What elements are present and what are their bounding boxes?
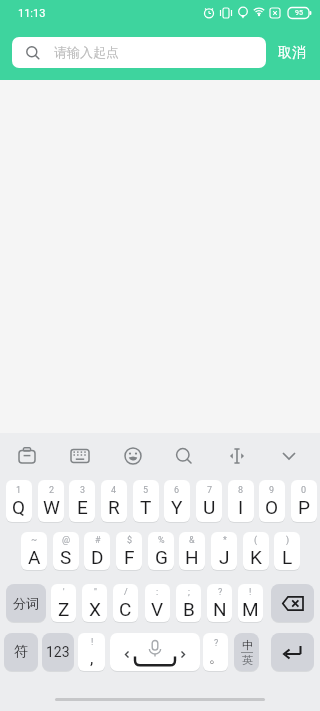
- button[interactable]: *: [211, 532, 237, 570]
- staticText: D: [91, 546, 104, 568]
- button[interactable]: [6, 435, 48, 477]
- button[interactable]: (: [243, 532, 269, 570]
- staticText: X: [89, 598, 101, 620]
- staticText: Y: [171, 496, 183, 518]
- button[interactable]: 分词: [6, 584, 46, 622]
- button[interactable]: /: [113, 584, 138, 622]
- button[interactable]: &: [179, 532, 205, 570]
- button[interactable]: !: [238, 584, 263, 622]
- staticText: M: [242, 598, 259, 620]
- button[interactable]: 0: [291, 480, 317, 522]
- staticText: 中: [242, 638, 253, 652]
- button[interactable]: 9: [259, 480, 285, 522]
- staticText: 6: [174, 485, 180, 496]
- staticText: :: [156, 587, 159, 598]
- staticText: ?: [218, 587, 223, 598]
- staticText: ': [63, 587, 65, 598]
- staticText: B: [183, 598, 195, 620]
- button[interactable]: [163, 435, 205, 477]
- staticText: T: [140, 496, 152, 518]
- button[interactable]: 5: [133, 480, 159, 522]
- button[interactable]: ": [82, 584, 107, 622]
- staticText: 95: [295, 9, 303, 17]
- staticText: K: [250, 546, 262, 568]
- staticText: G: [155, 546, 168, 568]
- button[interactable]: ?: [203, 633, 228, 671]
- staticText: 请输入起点: [54, 44, 119, 60]
- staticText: P: [298, 496, 310, 518]
- staticText: 。: [209, 649, 223, 667]
- button[interactable]: 中: [234, 633, 259, 671]
- staticText: O: [265, 496, 279, 518]
- button[interactable]: 123: [42, 633, 74, 671]
- staticText: $: [127, 535, 133, 546]
- button[interactable]: 2: [38, 480, 64, 522]
- button[interactable]: %: [148, 532, 174, 570]
- button[interactable]: !: [78, 633, 105, 671]
- button[interactable]: 6: [164, 480, 190, 522]
- staticText: U: [203, 496, 216, 518]
- staticText: V: [151, 598, 164, 620]
- staticText: 0: [301, 485, 307, 496]
- staticText: @: [62, 535, 71, 546]
- staticText: *: [223, 535, 227, 546]
- staticText: 分词: [13, 595, 39, 611]
- staticText: 11:13: [18, 7, 46, 20]
- button[interactable]: [110, 633, 200, 671]
- staticText: (: [254, 535, 258, 546]
- staticText: ?: [214, 638, 219, 649]
- staticText: C: [119, 598, 132, 620]
- button[interactable]: ): [274, 532, 300, 570]
- button[interactable]: 3: [69, 480, 95, 522]
- button[interactable]: 请输入起点: [12, 37, 266, 68]
- staticText: R: [108, 496, 120, 518]
- button[interactable]: ~: [21, 532, 47, 570]
- staticText: ": [94, 587, 97, 598]
- staticText: 1: [16, 485, 22, 496]
- button[interactable]: [268, 435, 310, 477]
- staticText: 4: [111, 485, 117, 496]
- button[interactable]: [59, 435, 101, 477]
- button[interactable]: :: [145, 584, 170, 622]
- button[interactable]: 7: [196, 480, 222, 522]
- staticText: ): [286, 535, 290, 546]
- staticText: ,: [90, 648, 94, 668]
- staticText: /: [124, 587, 128, 598]
- button[interactable]: 4: [101, 480, 127, 522]
- staticText: 5: [143, 485, 149, 496]
- button[interactable]: [271, 633, 314, 671]
- staticText: W: [43, 496, 60, 518]
- button[interactable]: [271, 584, 314, 622]
- button[interactable]: ;: [176, 584, 201, 622]
- staticText: F: [124, 546, 135, 568]
- button[interactable]: #: [84, 532, 110, 570]
- staticText: N: [213, 598, 227, 620]
- button[interactable]: @: [53, 532, 79, 570]
- staticText: ~: [31, 535, 38, 546]
- staticText: ;: [188, 587, 190, 598]
- button[interactable]: 1: [6, 480, 32, 522]
- staticText: A: [28, 546, 41, 568]
- staticText: !: [249, 587, 252, 598]
- button[interactable]: ': [51, 584, 76, 622]
- staticText: 2: [49, 485, 55, 496]
- staticText: Q: [12, 496, 26, 518]
- staticText: 7: [207, 485, 213, 496]
- button[interactable]: [216, 435, 258, 477]
- staticText: !: [91, 637, 94, 648]
- staticText: 符: [14, 643, 28, 661]
- button[interactable]: $: [116, 532, 142, 570]
- button[interactable]: 8: [228, 480, 254, 522]
- staticText: #: [95, 535, 101, 546]
- staticText: J: [219, 546, 230, 568]
- staticText: 123: [46, 644, 70, 660]
- button[interactable]: ?: [207, 584, 232, 622]
- button[interactable]: 取消: [271, 37, 313, 68]
- button[interactable]: [112, 435, 154, 477]
- staticText: %: [158, 535, 165, 546]
- staticText: 9: [269, 485, 275, 496]
- staticText: H: [185, 546, 199, 568]
- staticText: S: [60, 546, 72, 568]
- staticText: 取消: [278, 44, 306, 62]
- button[interactable]: 符: [4, 633, 38, 671]
